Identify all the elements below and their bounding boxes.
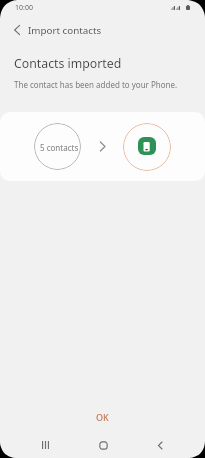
staticText: 5 contacts <box>40 142 79 153</box>
button[interactable]: Home <box>92 434 114 456</box>
button[interactable] <box>123 123 171 171</box>
staticText: OK <box>96 411 109 423</box>
staticText: Import contacts <box>28 24 102 37</box>
staticText: Contacts imported <box>14 55 122 72</box>
staticText: 10:00 <box>15 3 33 13</box>
button[interactable]: Recent apps <box>34 434 56 456</box>
staticText: The contact has been added to your Phone… <box>14 79 178 90</box>
button[interactable]: Back <box>7 20 26 39</box>
button[interactable]: OK <box>0 406 205 428</box>
button[interactable]: 5 contacts <box>34 123 81 170</box>
button[interactable]: Back <box>149 434 171 456</box>
